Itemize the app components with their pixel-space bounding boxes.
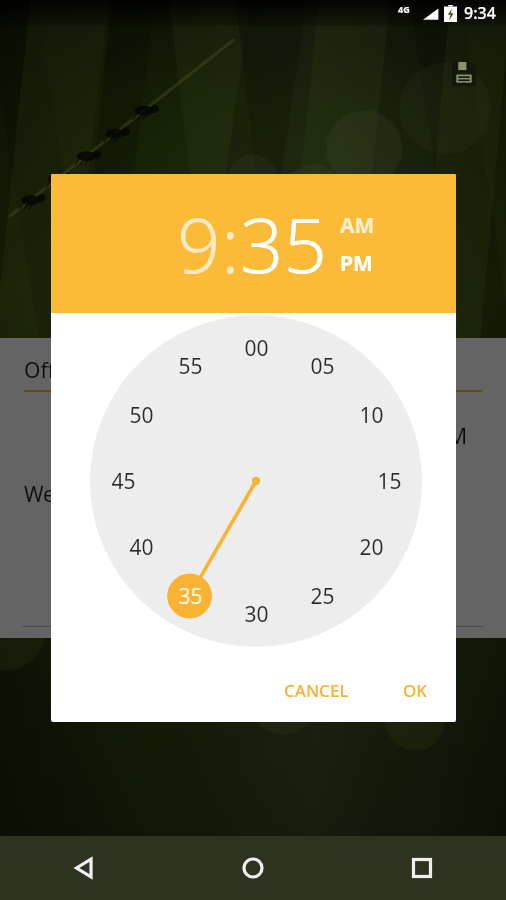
button[interactable]: Recent apps [337, 836, 506, 900]
staticText: 50 [129, 401, 154, 430]
button[interactable]: 35 [240, 192, 327, 296]
staticText: 4G [398, 3, 410, 15]
staticText: CANCEL [284, 679, 349, 702]
staticText: 35 [240, 192, 327, 296]
staticText: 45 [111, 467, 136, 496]
staticText: : [221, 192, 240, 296]
staticText: 9 [177, 192, 221, 296]
staticText: 20 [359, 533, 384, 562]
staticText: 9:34 [464, 2, 496, 24]
button[interactable]: CANCEL [270, 669, 363, 712]
staticText: 05 [310, 352, 335, 381]
staticText: Office [24, 356, 83, 385]
staticText: 35 [178, 582, 203, 611]
staticText: 25 [310, 582, 335, 611]
button[interactable]: Back [0, 836, 168, 900]
staticText: 30 [244, 600, 269, 629]
staticText: PM [340, 249, 373, 278]
staticText: 00 [244, 334, 269, 363]
button[interactable]: AM [340, 211, 375, 240]
staticText: OK [403, 679, 428, 702]
staticText: 10 [359, 401, 384, 430]
staticText: 15 [377, 467, 402, 496]
staticText: PM [434, 420, 468, 450]
button[interactable]: Minute dial [90, 315, 422, 647]
button[interactable]: OK [389, 669, 442, 712]
staticText: 55 [178, 352, 203, 381]
staticText: 40 [129, 533, 154, 562]
button[interactable]: Save [446, 56, 482, 92]
staticText: AM [340, 211, 375, 240]
button[interactable]: 9 [177, 192, 221, 296]
staticText: Weekdays [24, 480, 124, 509]
button[interactable]: Home [168, 836, 337, 900]
button[interactable]: PM [340, 249, 373, 278]
